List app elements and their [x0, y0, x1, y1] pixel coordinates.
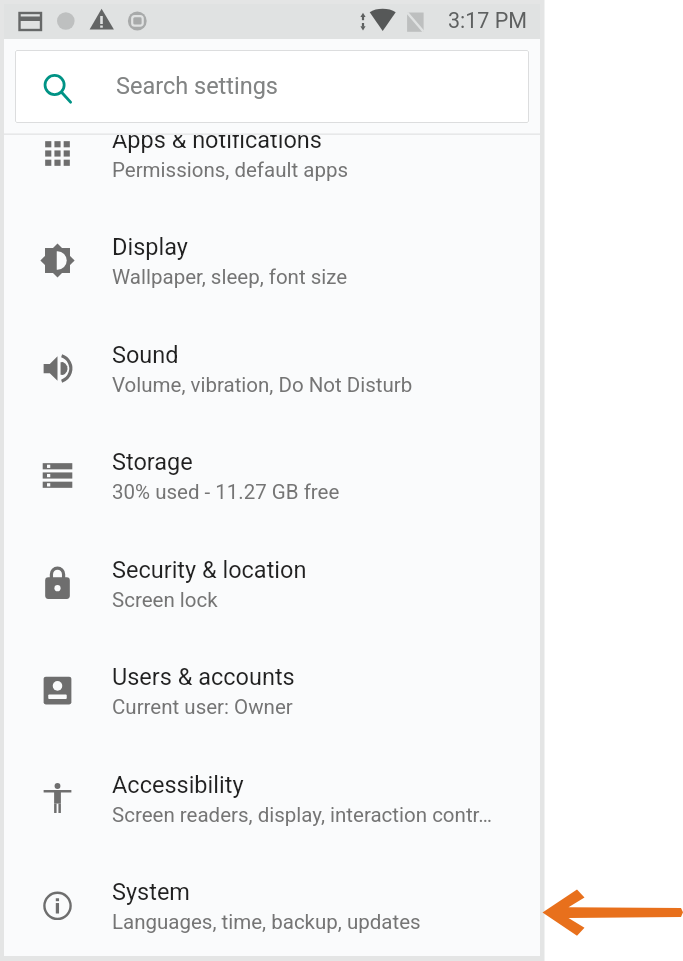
staticText: Screen readers, display, interaction con…	[112, 803, 493, 827]
button[interactable]: Security & location	[4, 543, 540, 650]
staticText: Sound	[112, 341, 179, 369]
staticText: 3:17 PM	[448, 8, 528, 33]
other: Search	[43, 74, 72, 103]
button[interactable]: Storage	[4, 435, 540, 542]
button[interactable]: Display	[4, 220, 540, 327]
staticText: Screen lock	[112, 588, 218, 612]
button[interactable]: Accessibility	[4, 758, 540, 865]
button[interactable]: Search	[15, 50, 529, 123]
button[interactable]: Apps & notifications	[4, 113, 540, 220]
staticText: Security & location	[112, 556, 307, 584]
staticText: System	[112, 878, 190, 906]
staticText: Accessibility	[112, 771, 244, 799]
staticText: Storage	[112, 448, 193, 476]
staticText: Current user: Owner	[112, 695, 293, 719]
staticText: Languages, time, backup, updates	[112, 910, 421, 934]
staticText: 30% used - 11.27 GB free	[112, 480, 340, 504]
button[interactable]: Sound	[4, 328, 540, 435]
staticText: Search settings	[116, 72, 278, 100]
staticText: Volume, vibration, Do Not Disturb	[112, 373, 413, 397]
staticText: Display	[112, 233, 188, 261]
staticText: Apps & notifications	[112, 126, 322, 154]
staticText: Wallpaper, sleep, font size	[112, 265, 348, 289]
staticText: Users & accounts	[112, 663, 295, 691]
staticText: Permissions, default apps	[112, 158, 348, 182]
button[interactable]: Users & accounts	[4, 650, 540, 757]
button[interactable]: System	[4, 865, 540, 961]
